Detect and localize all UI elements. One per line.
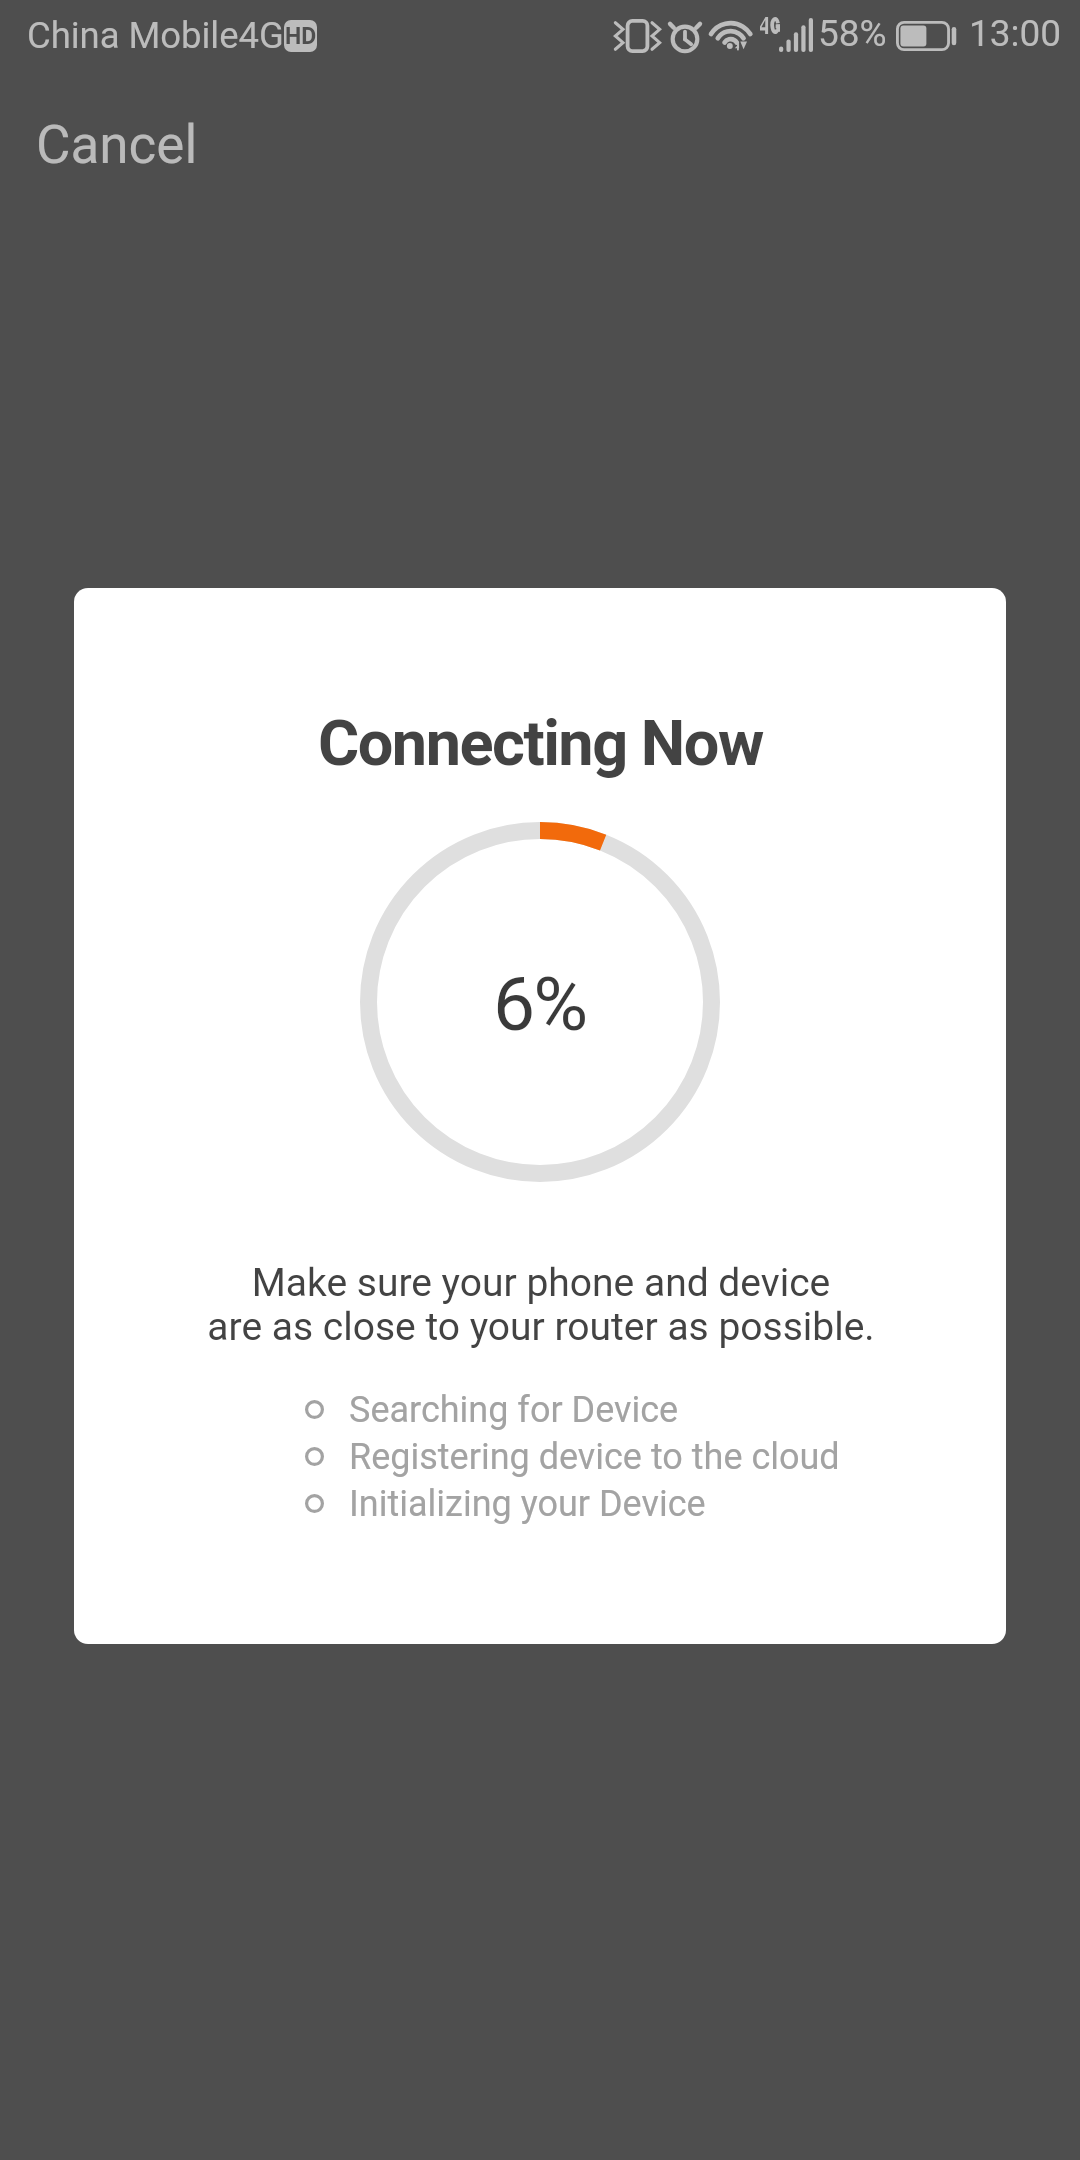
other: Alarm set: [667, 14, 703, 52]
staticText: 6%: [493, 960, 587, 1048]
button[interactable]: Searching for Device: [305, 1386, 679, 1433]
button[interactable]: Cancel: [14, 100, 220, 190]
staticText: Registering device to the cloud: [349, 1436, 840, 1478]
staticText: Make sure your phone and device are as c…: [207, 1260, 875, 1349]
other: Battery 58 percent: [896, 21, 957, 51]
staticText: HD: [285, 23, 317, 50]
staticText: Initializing your Device: [349, 1483, 706, 1525]
staticText: 13:00: [969, 12, 1062, 55]
staticText: Cancel: [36, 114, 198, 176]
button[interactable]: Registering device to the cloud: [305, 1433, 840, 1480]
staticText: Connecting Now: [318, 707, 763, 781]
staticText: China Mobile4G: [27, 14, 284, 57]
staticText: Searching for Device: [349, 1389, 679, 1431]
other: 4G network: [760, 17, 780, 34]
other: Wi-Fi connected: [712, 19, 753, 50]
other: Signal strength: [779, 18, 813, 52]
staticText: 58%: [818, 12, 887, 55]
other: Vibrate mode: [615, 19, 660, 53]
button[interactable]: Initializing your Device: [305, 1480, 706, 1527]
